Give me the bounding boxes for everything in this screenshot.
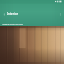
button[interactable]: More options <box>58 12 62 16</box>
button[interactable]: Back <box>2 12 6 16</box>
staticText: Natural wood textures <box>2 23 23 26</box>
staticText: Interior <box>7 12 18 16</box>
button[interactable]: Wooden interior photo <box>0 26 64 64</box>
